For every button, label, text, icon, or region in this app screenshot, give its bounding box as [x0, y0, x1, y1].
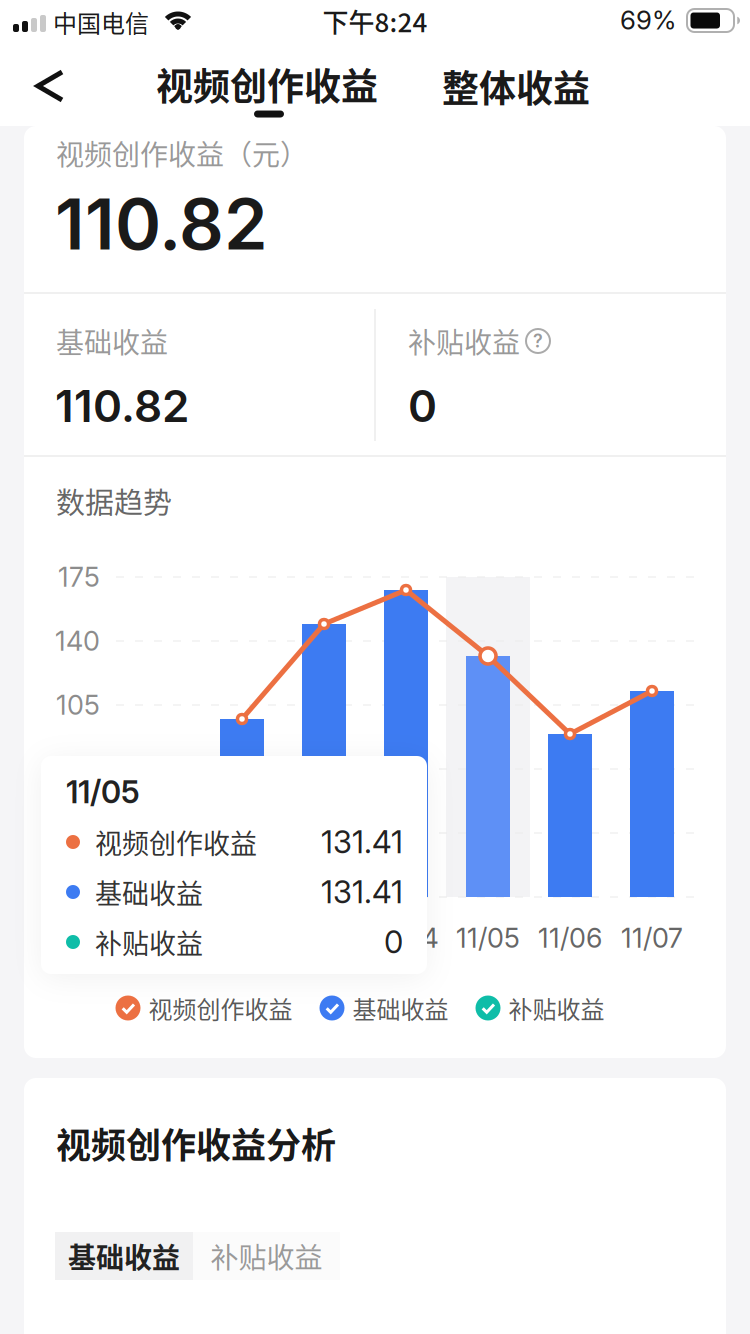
staticText: 中国电信	[53, 5, 149, 39]
staticText: 补贴收益	[508, 991, 604, 1025]
staticText: 105	[56, 689, 100, 721]
staticText: 视频创作收益	[95, 822, 257, 862]
staticText: 视频创作收益	[156, 57, 378, 111]
button[interactable]: 基础收益	[319, 991, 448, 1025]
button[interactable]: 整体收益	[426, 56, 606, 116]
button[interactable]: 视频创作收益	[115, 991, 292, 1025]
staticText: 175	[58, 561, 100, 593]
button[interactable]: 补贴收益	[193, 1232, 340, 1280]
staticText: 0	[408, 379, 437, 433]
staticText: 视频创作收益（元）	[56, 133, 308, 173]
staticText: 11/05	[66, 773, 140, 811]
staticText: 数据趋势	[56, 480, 172, 522]
staticText: 补贴收益	[408, 321, 520, 361]
button[interactable]: 视频创作收益	[155, 57, 379, 121]
staticText: 131.41	[321, 873, 403, 911]
staticText: 基础收益	[56, 321, 168, 361]
staticText: 140	[55, 625, 100, 657]
staticText: 69%	[620, 4, 676, 36]
staticText: 11/05	[456, 922, 520, 954]
staticText: 110.82	[55, 182, 268, 266]
staticText: 110.82	[55, 379, 189, 433]
staticText: 131.41	[321, 823, 403, 861]
staticText: 11/04	[373, 922, 438, 954]
button[interactable]: 基础收益	[55, 1232, 193, 1280]
staticText: 整体收益	[442, 59, 590, 113]
staticText: 11/06	[538, 922, 602, 954]
staticText: 下午8:24	[322, 2, 427, 40]
staticText: ?	[533, 330, 543, 352]
staticText: 基础收益	[95, 872, 203, 912]
staticText: 基础收益	[352, 991, 448, 1025]
staticText: 视频创作收益分析	[56, 1118, 336, 1168]
staticText: 补贴收益	[95, 922, 203, 962]
button[interactable]: 补贴收益	[475, 991, 604, 1025]
staticText: 补贴收益	[210, 1236, 322, 1276]
button[interactable]: 补贴收益说明	[525, 328, 551, 354]
staticText: 0	[384, 923, 403, 961]
button[interactable]: Back	[20, 58, 76, 114]
staticText: 基础收益	[68, 1236, 180, 1276]
staticText: 视频创作收益	[148, 991, 292, 1025]
staticText: 11/07	[621, 922, 683, 954]
